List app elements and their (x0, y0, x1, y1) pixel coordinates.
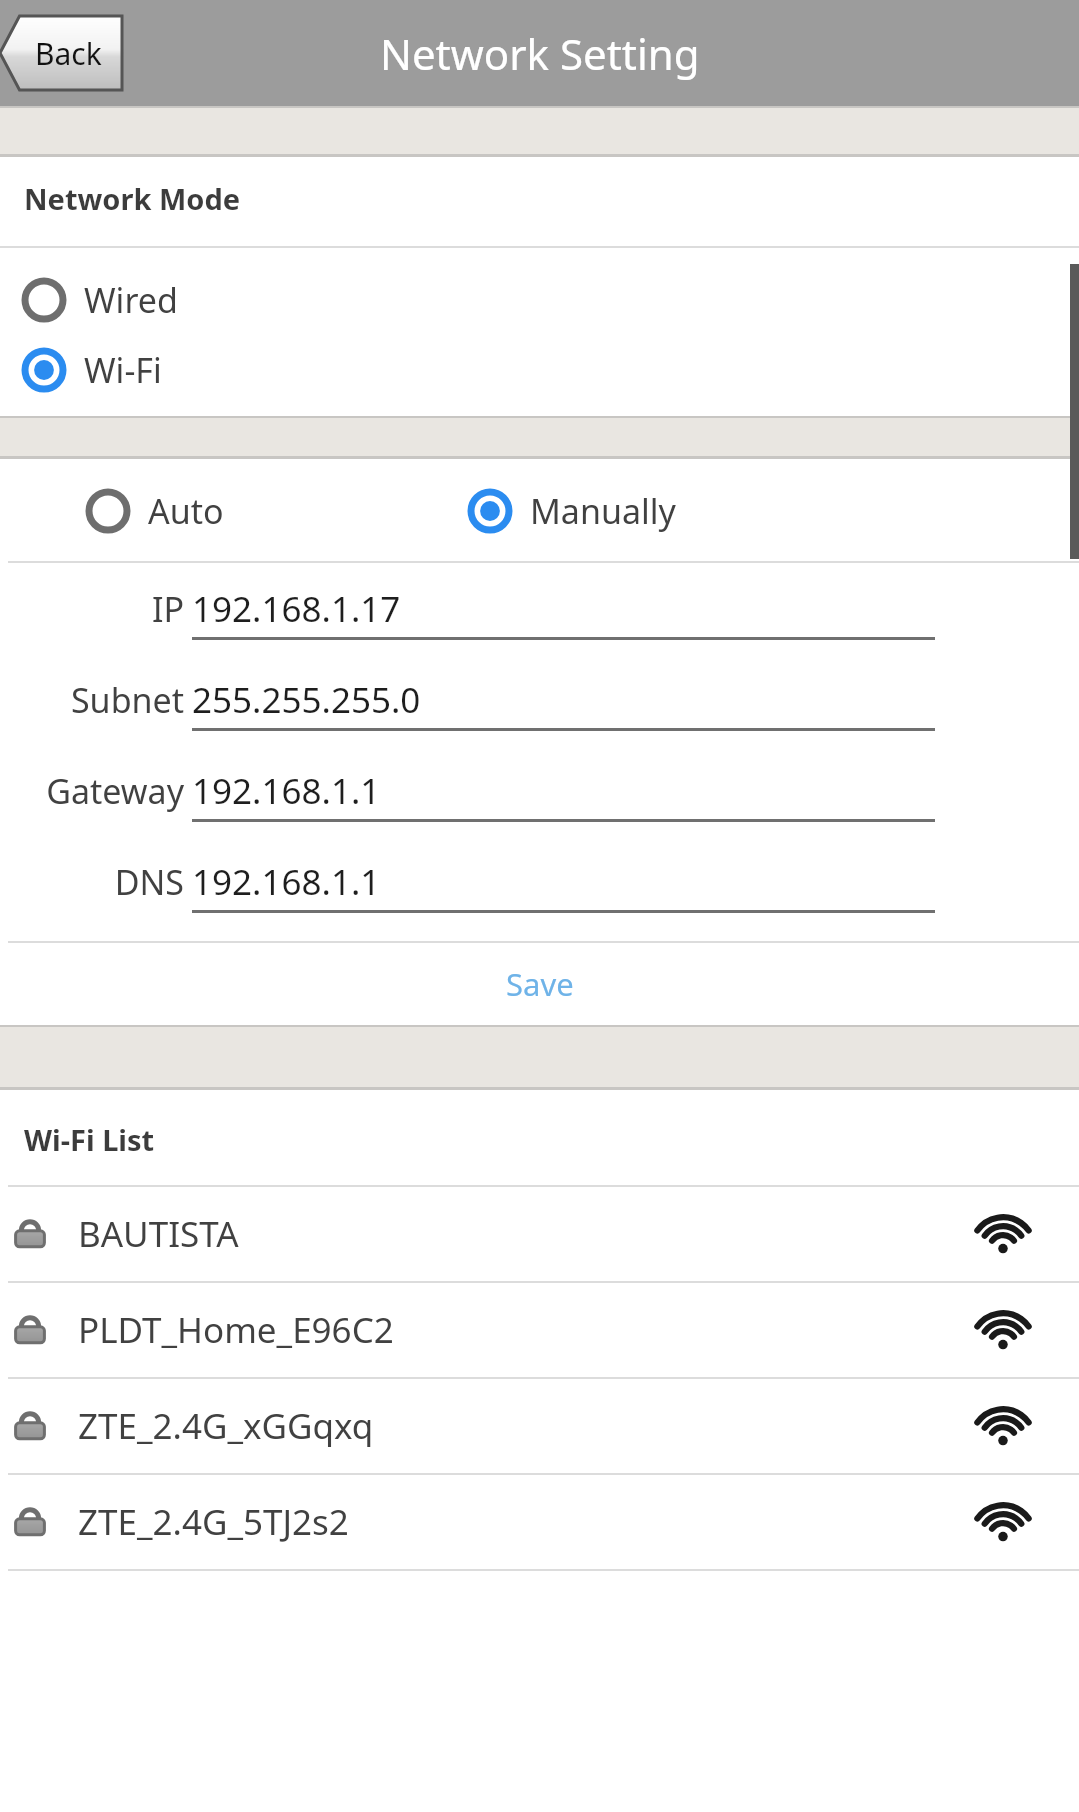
staticText: Auto (148, 488, 224, 534)
button[interactable]: Save (0, 943, 1079, 1025)
staticText: Save (506, 963, 574, 1005)
staticText: Network Mode (24, 179, 241, 218)
button[interactable]: ZTE_2.4G_5TJ2s2 (0, 1475, 1079, 1569)
button[interactable]: Wired (0, 270, 194, 330)
button[interactable]: DNS (0, 836, 1079, 927)
staticText: PLDT_Home_E96C2 (78, 1306, 975, 1354)
staticText: IP (151, 586, 184, 632)
staticText: Wi-Fi (84, 347, 162, 393)
staticText: Wired (84, 277, 178, 323)
button[interactable]: PLDT_Home_E96C2 (0, 1283, 1079, 1377)
staticText: ZTE_2.4G_5TJ2s2 (78, 1498, 975, 1546)
staticText: DNS (114, 859, 184, 905)
button[interactable]: IP (0, 563, 1079, 654)
staticText: Manually (530, 488, 676, 534)
button[interactable]: BAUTISTA (0, 1187, 1079, 1281)
staticText: Subnet (70, 677, 184, 723)
button[interactable]: ZTE_2.4G_xGGqxq (0, 1379, 1079, 1473)
staticText: 192.168.1.1 (192, 858, 381, 906)
staticText: 192.168.1.17 (192, 585, 401, 633)
button[interactable]: Auto (0, 481, 240, 541)
staticText: BAUTISTA (78, 1210, 975, 1258)
button[interactable]: Manually (458, 481, 692, 541)
staticText: Wi-Fi List (24, 1120, 155, 1159)
button[interactable]: Gateway (0, 745, 1079, 836)
staticText: Back (35, 33, 102, 74)
button[interactable]: Subnet (0, 654, 1079, 745)
staticText: Network Setting (380, 25, 700, 82)
staticText: Gateway (46, 768, 184, 814)
staticText: 192.168.1.1 (192, 767, 381, 815)
staticText: 255.255.255.0 (192, 676, 421, 724)
button[interactable]: Back (0, 16, 122, 90)
staticText: ZTE_2.4G_xGGqxq (78, 1402, 975, 1450)
button[interactable]: Wi-Fi (0, 340, 178, 400)
